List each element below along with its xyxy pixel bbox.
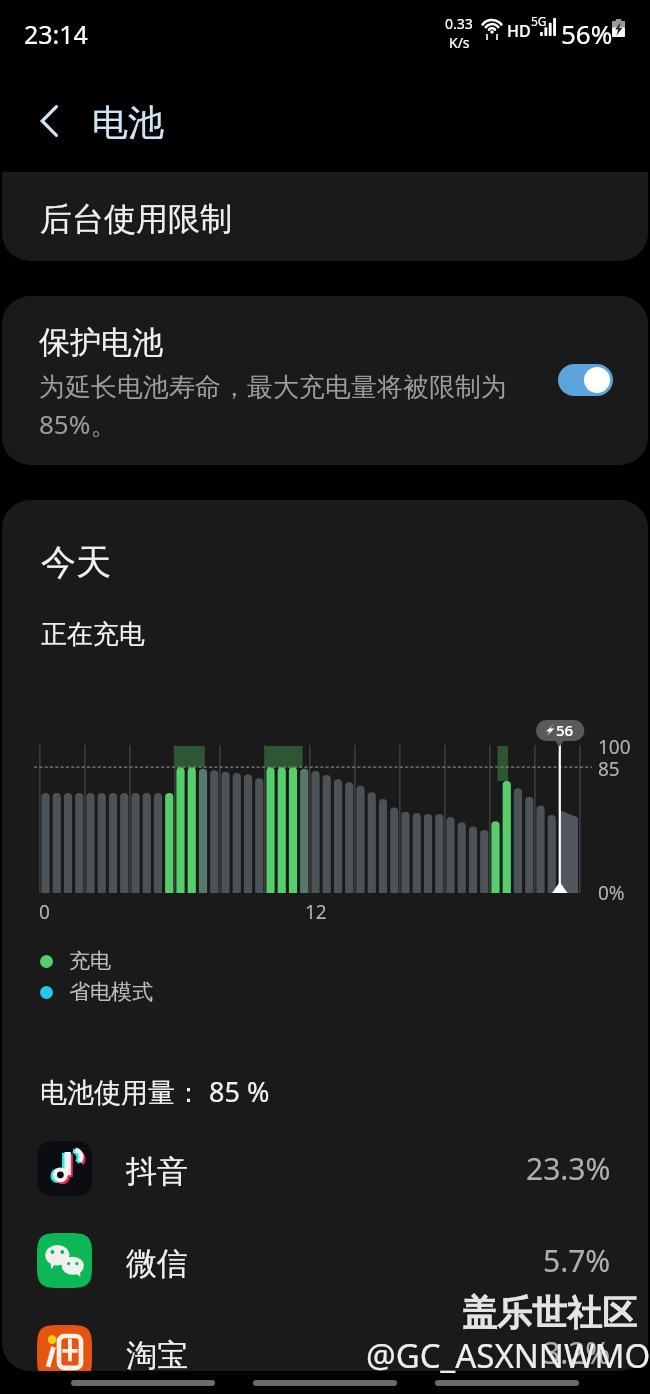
staticText: 淘宝	[126, 1336, 188, 1371]
staticText: 23:14	[24, 17, 88, 51]
staticText: HD	[507, 20, 531, 42]
staticText: 盖乐世社区	[462, 1291, 637, 1335]
staticText: 微信	[126, 1244, 188, 1283]
staticText: 电池	[92, 100, 164, 145]
button[interactable]: 后台使用限制	[2, 172, 648, 261]
button[interactable]: Back	[18, 90, 80, 152]
staticText: 3.2%	[543, 1332, 611, 1371]
staticText: 12	[305, 899, 327, 925]
staticText: 今天	[41, 540, 111, 584]
staticText: 0%	[598, 880, 625, 906]
staticText: 省电模式	[69, 979, 153, 1005]
button[interactable]: 微信	[2, 1214, 648, 1306]
staticText: 56	[556, 720, 574, 740]
staticText: 抖音	[126, 1152, 188, 1191]
staticText: 56%	[561, 16, 613, 51]
staticText: 后台使用限制	[40, 199, 232, 239]
button[interactable]: 抖音	[2, 1122, 648, 1214]
staticText: 电池使用量： 85 %	[40, 1073, 270, 1110]
staticText: @GC_ASXNNWMO	[366, 1333, 650, 1378]
staticText: 5.7%	[543, 1240, 611, 1281]
staticText: 保护电池	[39, 323, 163, 362]
button[interactable]: 淘宝	[2, 1306, 648, 1371]
button[interactable]: Navigation	[253, 1380, 397, 1386]
button[interactable]: 保护电池	[558, 364, 613, 396]
staticText: 正在充电	[41, 618, 145, 651]
staticText: 85	[598, 756, 620, 782]
staticText: 100	[598, 734, 631, 760]
staticText: K/s	[449, 33, 470, 52]
staticText: 23.3%	[526, 1148, 611, 1189]
button[interactable]: Navigation	[435, 1380, 579, 1386]
staticText: 充电	[69, 948, 111, 974]
staticText: 为延长电池寿命，最大充电量将被限制为 85%。	[39, 371, 507, 442]
staticText: 0	[39, 899, 50, 925]
button[interactable]: 保护电池	[2, 296, 648, 465]
button[interactable]: Navigation	[71, 1380, 215, 1386]
staticText: 0.33	[445, 14, 473, 33]
staticText: 5G	[531, 13, 547, 29]
